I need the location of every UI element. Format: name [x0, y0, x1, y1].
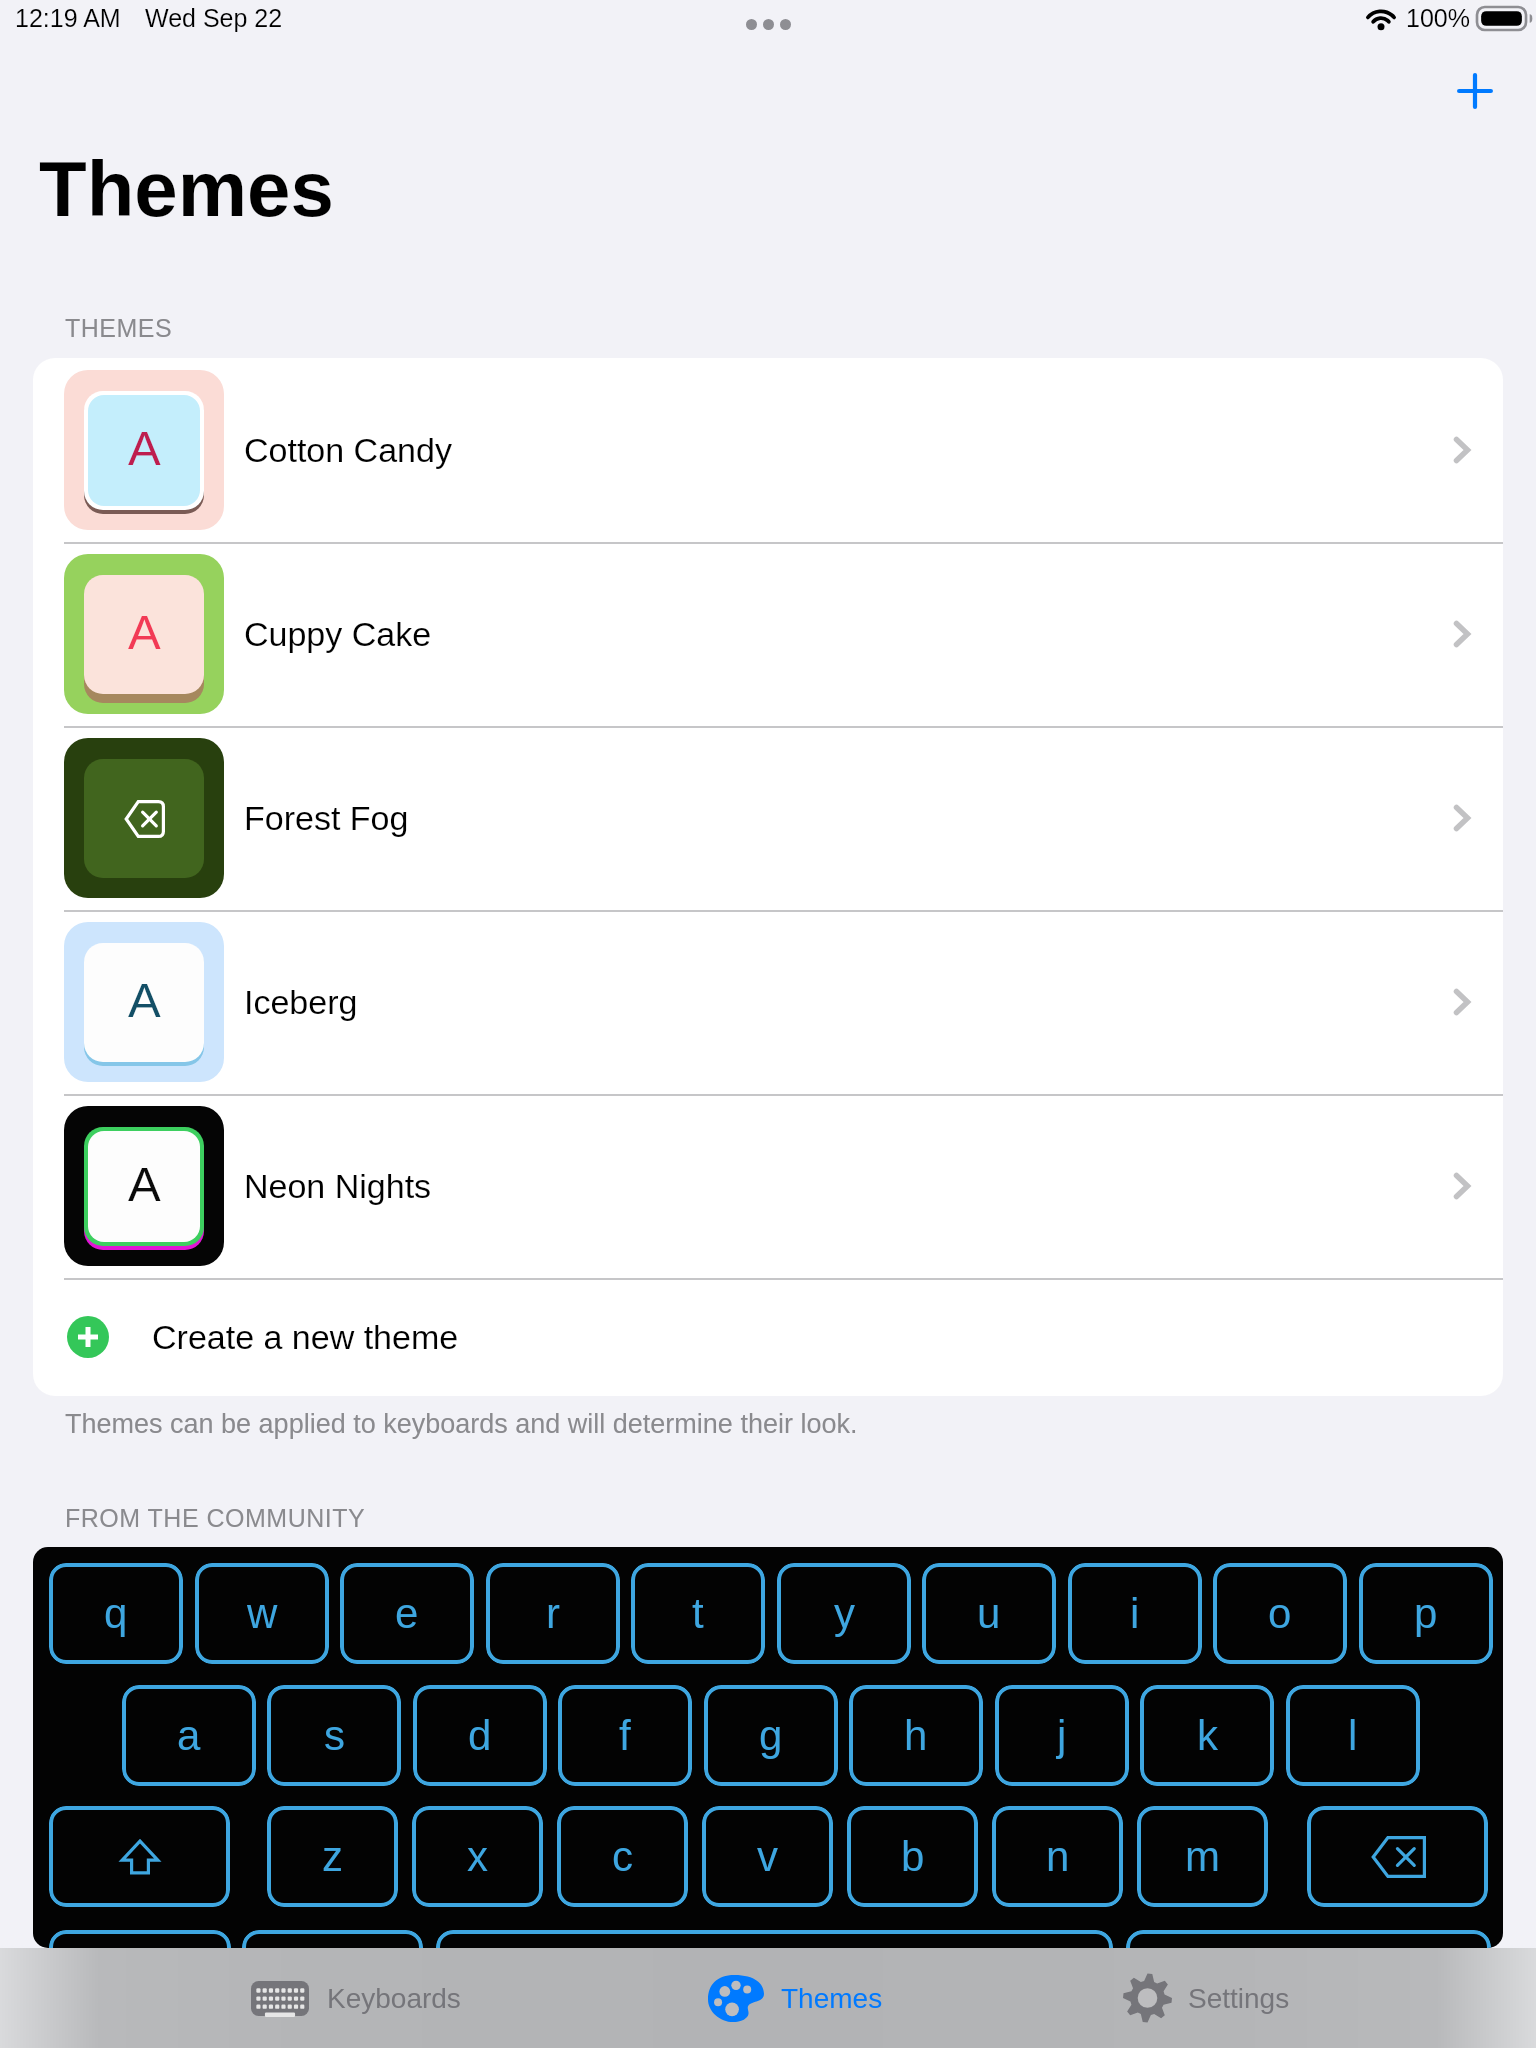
staticText: A	[128, 421, 161, 476]
staticText: o	[1268, 1590, 1292, 1637]
staticText: FROM THE COMMUNITY	[65, 1504, 366, 1532]
staticText: t	[692, 1590, 704, 1637]
staticText: j	[1057, 1712, 1067, 1759]
staticText: Themes can be applied to keyboards and w…	[65, 1409, 858, 1439]
staticText: Neon Nights	[244, 1167, 432, 1205]
staticText: 12:19 AM	[15, 4, 121, 32]
staticText: Create a new theme	[152, 1318, 459, 1356]
staticText: Keyboards	[327, 1983, 461, 2014]
staticText: z	[322, 1833, 343, 1880]
button[interactable]: Create a new theme	[33, 1278, 1503, 1396]
staticText: Cotton Candy	[244, 431, 452, 469]
staticText: Forest Fog	[244, 799, 409, 837]
button[interactable]: Add theme	[1441, 57, 1508, 124]
staticText: c	[612, 1833, 633, 1880]
button[interactable]: A	[33, 1094, 1503, 1278]
staticText: 100%	[1406, 4, 1470, 32]
button[interactable]: A	[33, 358, 1503, 542]
staticText: THEMES	[65, 314, 173, 342]
staticText: Wed Sep 22	[145, 4, 283, 32]
button[interactable]: A	[33, 542, 1503, 726]
staticText: w	[247, 1590, 278, 1637]
staticText: a	[177, 1712, 201, 1759]
staticText: f	[619, 1712, 631, 1759]
staticText: q	[104, 1590, 128, 1637]
button[interactable]: Keyboards	[251, 1948, 461, 2048]
staticText: Cuppy Cake	[244, 615, 432, 653]
button[interactable]: A	[33, 910, 1503, 1094]
staticText: x	[467, 1833, 488, 1880]
staticText: Settings	[1188, 1983, 1290, 2014]
staticText: A	[128, 973, 161, 1028]
button[interactable]: Themes	[708, 1948, 883, 2048]
staticText: k	[1197, 1712, 1218, 1759]
staticText: g	[759, 1712, 783, 1759]
staticText: m	[1185, 1833, 1220, 1880]
staticText: Themes	[39, 145, 334, 232]
button[interactable]: Settings	[1123, 1948, 1290, 2048]
staticText: r	[546, 1590, 560, 1637]
staticText: e	[395, 1590, 419, 1637]
staticText: b	[901, 1833, 925, 1880]
staticText: u	[977, 1590, 1001, 1637]
staticText: A	[128, 1157, 161, 1212]
staticText: A	[128, 605, 161, 660]
staticText: p	[1414, 1590, 1438, 1637]
staticText: Themes	[781, 1983, 883, 2014]
staticText: s	[324, 1712, 345, 1759]
staticText: h	[904, 1712, 928, 1759]
staticText: d	[468, 1712, 492, 1759]
staticText: v	[757, 1833, 778, 1880]
button[interactable]: Forest Fog	[33, 726, 1503, 910]
staticText: y	[834, 1590, 855, 1637]
button[interactable]: q	[33, 1547, 1503, 1948]
staticText: n	[1046, 1833, 1070, 1880]
staticText: l	[1348, 1712, 1358, 1759]
staticText: i	[1130, 1590, 1140, 1637]
staticText: Iceberg	[244, 983, 358, 1021]
